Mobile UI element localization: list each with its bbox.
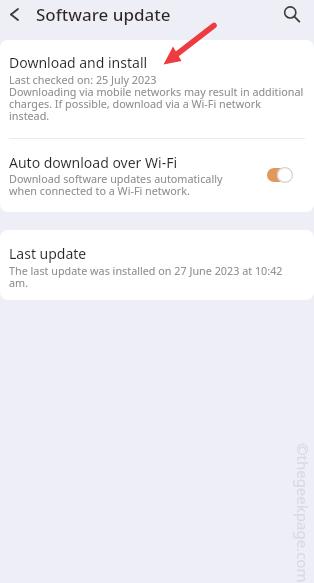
staticText: Software update — [36, 3, 171, 26]
staticText: ©thegeekpage.com — [293, 443, 313, 583]
button[interactable]: Last update — [0, 230, 314, 300]
button[interactable]: Auto download over Wi-Fi — [0, 139, 314, 212]
staticText: Download software updates automatically … — [9, 173, 223, 197]
button[interactable]: Search — [281, 0, 314, 29]
staticText: Last checked on: 25 July 2023 Downloadin… — [9, 74, 304, 122]
staticText: Last update — [9, 244, 87, 263]
button[interactable]: Back — [0, 0, 29, 29]
button[interactable]: Download and install — [0, 40, 314, 138]
staticText: Auto download over Wi-Fi — [9, 153, 178, 172]
staticText: The last update was installed on 27 June… — [9, 265, 283, 289]
button[interactable]: Auto download over Wi-Fi — [267, 167, 293, 183]
staticText: Download and install — [9, 53, 148, 72]
